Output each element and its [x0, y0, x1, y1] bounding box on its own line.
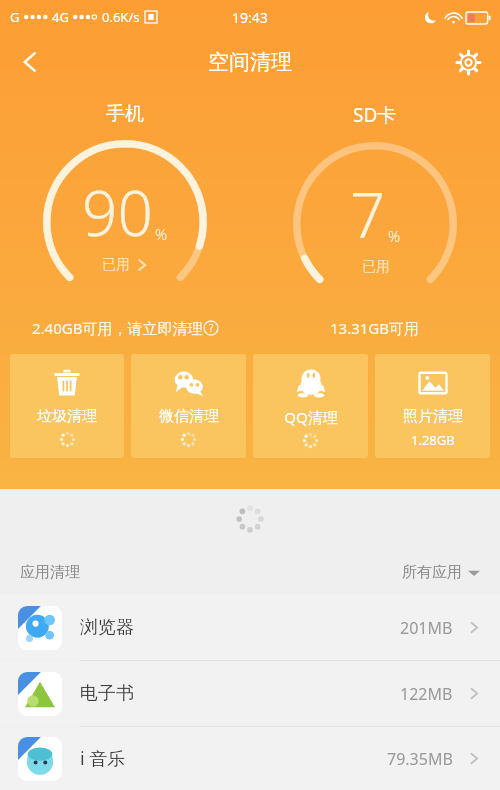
button[interactable]: QQ清理 [253, 354, 368, 458]
staticText: % [388, 226, 401, 246]
button[interactable]: 所有应用 [402, 563, 480, 582]
staticText: 照片清理 [403, 407, 463, 426]
staticText: 微信清理 [159, 407, 219, 426]
staticText: SD卡 [353, 102, 397, 128]
staticText: 90 [82, 170, 153, 254]
button[interactable]: Settings [444, 38, 492, 86]
button[interactable]: Back [6, 38, 54, 86]
staticText: 19:43 [232, 8, 268, 27]
button[interactable]: Help [203, 320, 219, 336]
staticText: 122MB [400, 683, 453, 705]
staticText: 所有应用 [402, 563, 462, 582]
staticText: 电子书 [80, 682, 134, 705]
staticText: 0.6K/s [102, 8, 140, 26]
staticText: i 音乐 [80, 746, 126, 771]
staticText: 已用 [102, 256, 130, 274]
staticText: 79.35MB [387, 748, 453, 770]
button[interactable]: SD卡 [250, 102, 500, 308]
staticText: 应用清理 [20, 563, 80, 582]
staticText: ? [209, 321, 214, 335]
button[interactable]: 手机 [0, 102, 250, 306]
staticText: 手机 [106, 102, 144, 126]
button[interactable]: 电子书 [0, 661, 500, 726]
button[interactable]: 浏览器 [0, 595, 500, 660]
staticText: 空间清理 [208, 49, 292, 75]
button[interactable]: 垃圾清理 [10, 354, 124, 458]
button[interactable]: 微信清理 [131, 354, 246, 458]
button[interactable]: 照片清理 [375, 354, 490, 458]
staticText: % [155, 224, 168, 244]
staticText: 2.40GB可用，请立即清理 [32, 318, 203, 338]
staticText: QQ清理 [284, 407, 338, 427]
staticText: 已用 [362, 258, 390, 276]
staticText: 垃圾清理 [37, 407, 97, 426]
staticText: 201MB [400, 617, 453, 639]
staticText: 4G [52, 8, 69, 26]
staticText: 13.31GB可用 [330, 318, 420, 338]
button[interactable]: i 音乐 [0, 727, 500, 790]
staticText: 1.28GB [411, 431, 455, 449]
staticText: G [10, 8, 20, 26]
staticText: 浏览器 [80, 616, 134, 639]
staticText: 7 [350, 172, 386, 256]
